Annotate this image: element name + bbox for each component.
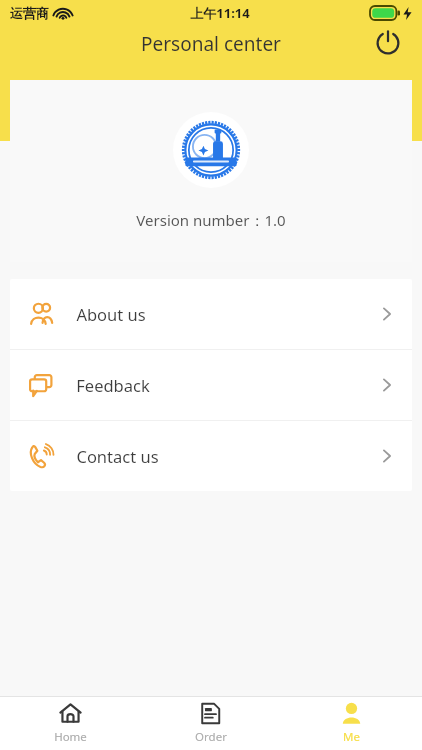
staticText: Order xyxy=(195,729,227,745)
staticText: Version number：1.0 xyxy=(136,210,286,230)
staticText: Me xyxy=(343,729,360,745)
staticText: 运营商 xyxy=(10,5,49,21)
staticText: Contact us xyxy=(76,445,159,467)
button[interactable]: Home xyxy=(0,697,140,750)
staticText: Feedback xyxy=(76,374,150,396)
button[interactable]: Log out xyxy=(366,20,410,64)
staticText: Home xyxy=(54,729,87,745)
button[interactable]: Contact us xyxy=(10,421,412,491)
button[interactable]: About us xyxy=(10,279,412,349)
button[interactable]: Me xyxy=(281,697,422,750)
staticText: 上午11:14 xyxy=(190,4,250,22)
staticText: About us xyxy=(76,303,146,325)
button[interactable]: Order xyxy=(140,697,281,750)
staticText: Personal center xyxy=(141,31,281,57)
button[interactable]: Feedback xyxy=(10,350,412,420)
